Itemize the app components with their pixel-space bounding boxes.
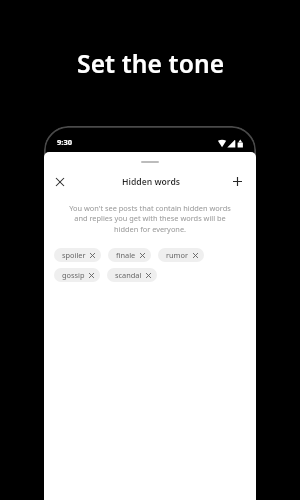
staticText: finale [116,250,136,260]
staticText: spoiler [62,250,86,260]
staticText: You won't see posts that contain hidden … [67,203,233,234]
staticText: scandal [115,270,142,280]
button[interactable]: Close [48,170,72,194]
button[interactable]: rumor [158,248,204,262]
staticText: 9:30 [57,137,72,147]
staticText: Hidden words [122,176,181,188]
staticText: rumor [166,250,189,260]
staticText: gossip [62,270,85,280]
button[interactable]: gossip [54,268,100,282]
button[interactable]: finale [108,248,151,262]
other: Status icons [217,139,244,149]
button[interactable]: spoiler [54,248,101,262]
button[interactable]: scandal [107,268,157,282]
staticText: Set the tone [77,47,225,81]
button[interactable]: Add hidden word [225,169,249,193]
